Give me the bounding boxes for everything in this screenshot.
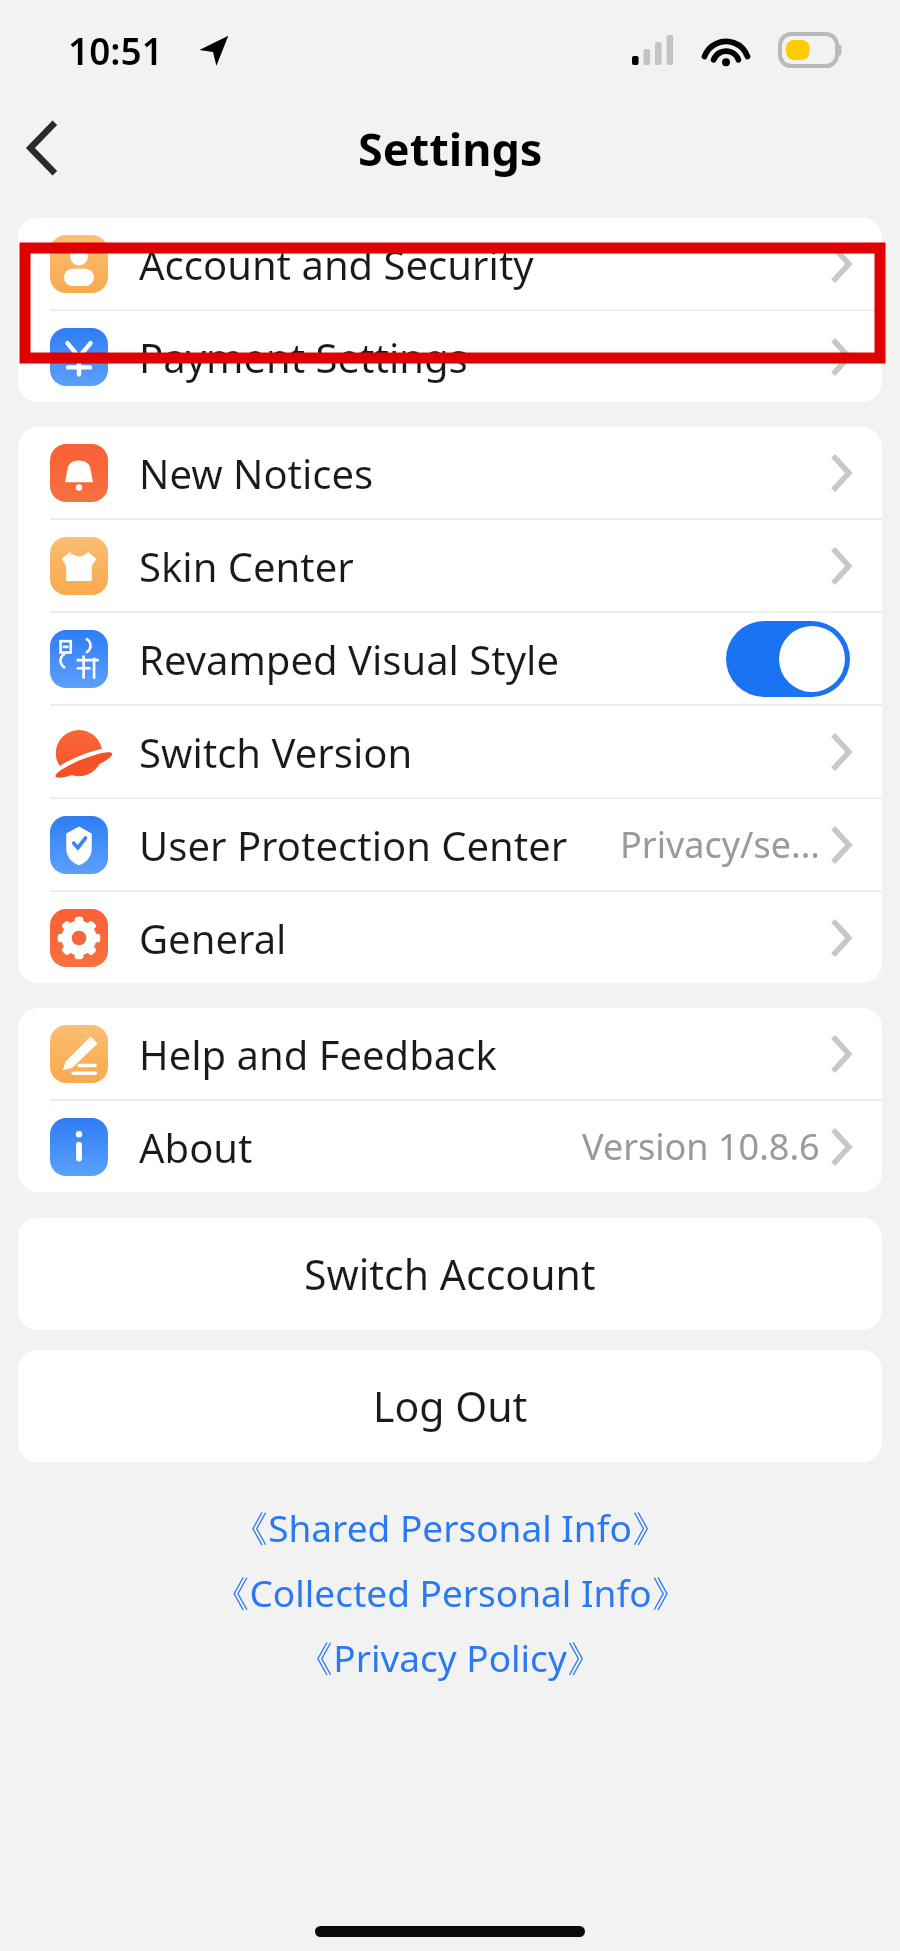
button[interactable]: Account and Security	[18, 218, 882, 309]
button[interactable]: Back	[0, 105, 86, 191]
button[interactable]: 《Collected Personal Info》	[212, 1567, 689, 1618]
button[interactable]: Toggle Revamped Visual Style	[726, 621, 850, 697]
staticText: About	[139, 1120, 253, 1174]
button[interactable]: Log Out	[18, 1350, 882, 1462]
staticText: Privacy/se...	[620, 820, 820, 869]
staticText: Switch Account	[304, 1246, 596, 1302]
staticText: General	[139, 911, 287, 965]
staticText: User Protection Center	[139, 818, 568, 872]
button[interactable]: Revamped Visual Style	[18, 613, 882, 704]
staticText: Help and Feedback	[139, 1027, 497, 1081]
button[interactable]: About	[18, 1101, 882, 1192]
button[interactable]: Payment Settings	[18, 311, 882, 402]
staticText: Log Out	[373, 1378, 528, 1434]
button[interactable]: New Notices	[18, 427, 882, 518]
button[interactable]: General	[18, 892, 882, 983]
staticText: Payment Settings	[139, 330, 468, 384]
staticText: Revamped Visual Style	[139, 632, 559, 686]
staticText: Switch Version	[139, 725, 413, 779]
staticText: 10:51	[68, 25, 163, 75]
staticText: Settings	[358, 118, 543, 179]
button[interactable]: Switch Account	[18, 1218, 882, 1330]
button[interactable]: 《Privacy Policy》	[296, 1632, 604, 1683]
button[interactable]: Switch Version	[18, 706, 882, 797]
button[interactable]: Help and Feedback	[18, 1008, 882, 1099]
button[interactable]: 《Shared Personal Info》	[231, 1502, 669, 1553]
staticText: New Notices	[139, 446, 374, 500]
staticText: Account and Security	[139, 237, 534, 291]
staticText: Skin Center	[139, 539, 354, 593]
staticText: Version 10.8.6	[582, 1122, 820, 1171]
button[interactable]: Skin Center	[18, 520, 882, 611]
button[interactable]: User Protection Center	[18, 799, 882, 890]
